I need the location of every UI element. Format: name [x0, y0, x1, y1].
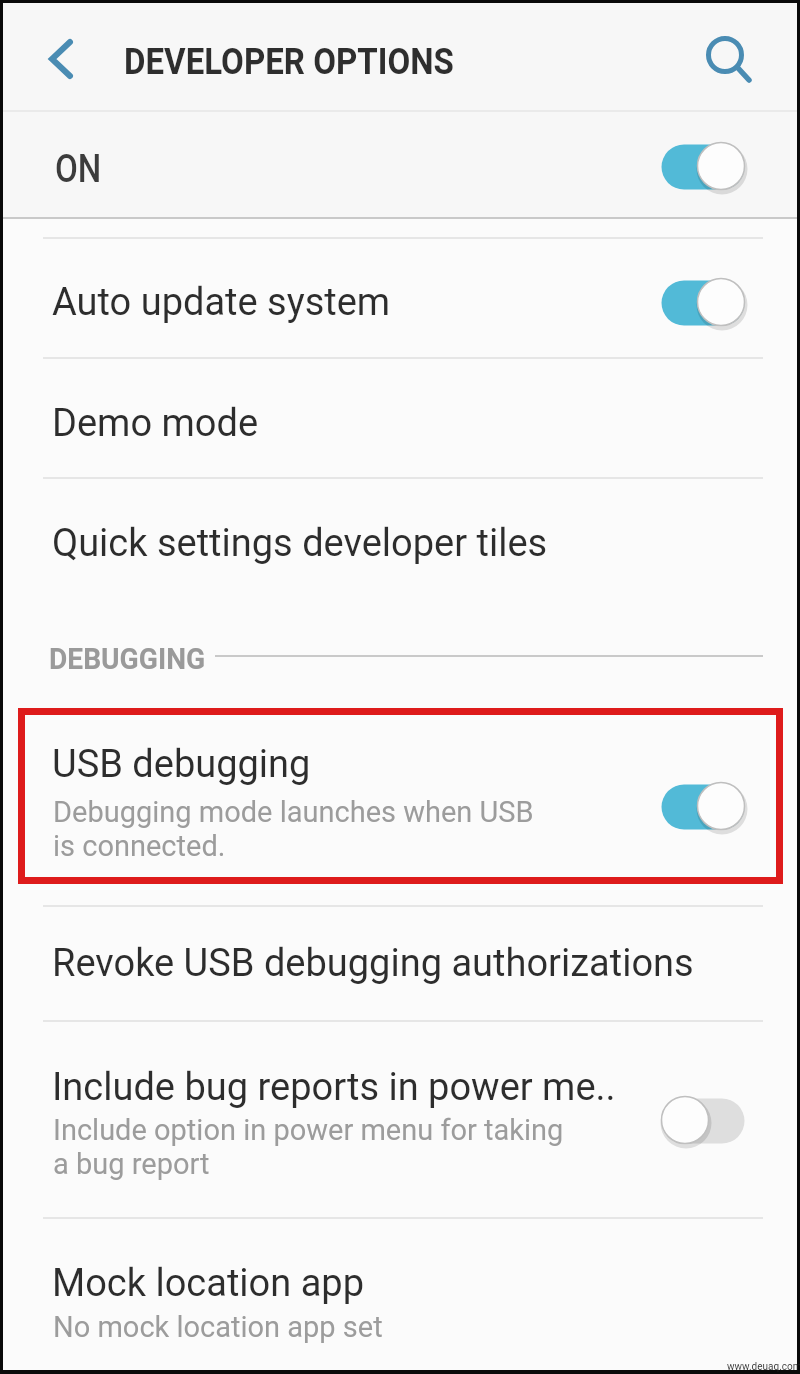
button[interactable] — [3, 1219, 797, 1367]
staticText: Demo mode — [52, 401, 259, 446]
staticText: Include bug reports in power me.. — [52, 1065, 616, 1110]
button[interactable] — [3, 112, 797, 217]
button[interactable] — [657, 1095, 749, 1147]
staticText: USB debugging — [52, 742, 311, 787]
button[interactable] — [3, 479, 797, 601]
button[interactable] — [18, 708, 783, 884]
staticText: Mock location app — [52, 1261, 364, 1306]
button[interactable] — [3, 906, 797, 1020]
staticText: is connected. — [53, 829, 226, 863]
staticText: No mock location app set — [53, 1310, 383, 1344]
button[interactable] — [657, 141, 749, 193]
staticText: DEBUGGING — [49, 641, 206, 676]
staticText: Quick settings developer tiles — [52, 521, 548, 566]
button[interactable] — [657, 277, 749, 329]
button[interactable] — [696, 25, 760, 89]
button[interactable] — [657, 781, 749, 833]
button[interactable] — [3, 363, 797, 477]
staticText: DEVELOPER OPTIONS — [124, 40, 454, 83]
staticText: Include option in power menu for taking — [53, 1113, 564, 1147]
staticText: a bug report — [53, 1147, 210, 1181]
button[interactable] — [3, 239, 797, 361]
button[interactable] — [33, 30, 89, 86]
button[interactable] — [3, 1021, 797, 1217]
staticText: Revoke USB debugging authorizations — [52, 941, 694, 986]
staticText: ON — [55, 146, 102, 192]
staticText: Debugging mode launches when USB — [53, 795, 534, 829]
staticText: Auto update system — [52, 280, 391, 325]
staticText: www.deuaq.com — [727, 1361, 800, 1373]
